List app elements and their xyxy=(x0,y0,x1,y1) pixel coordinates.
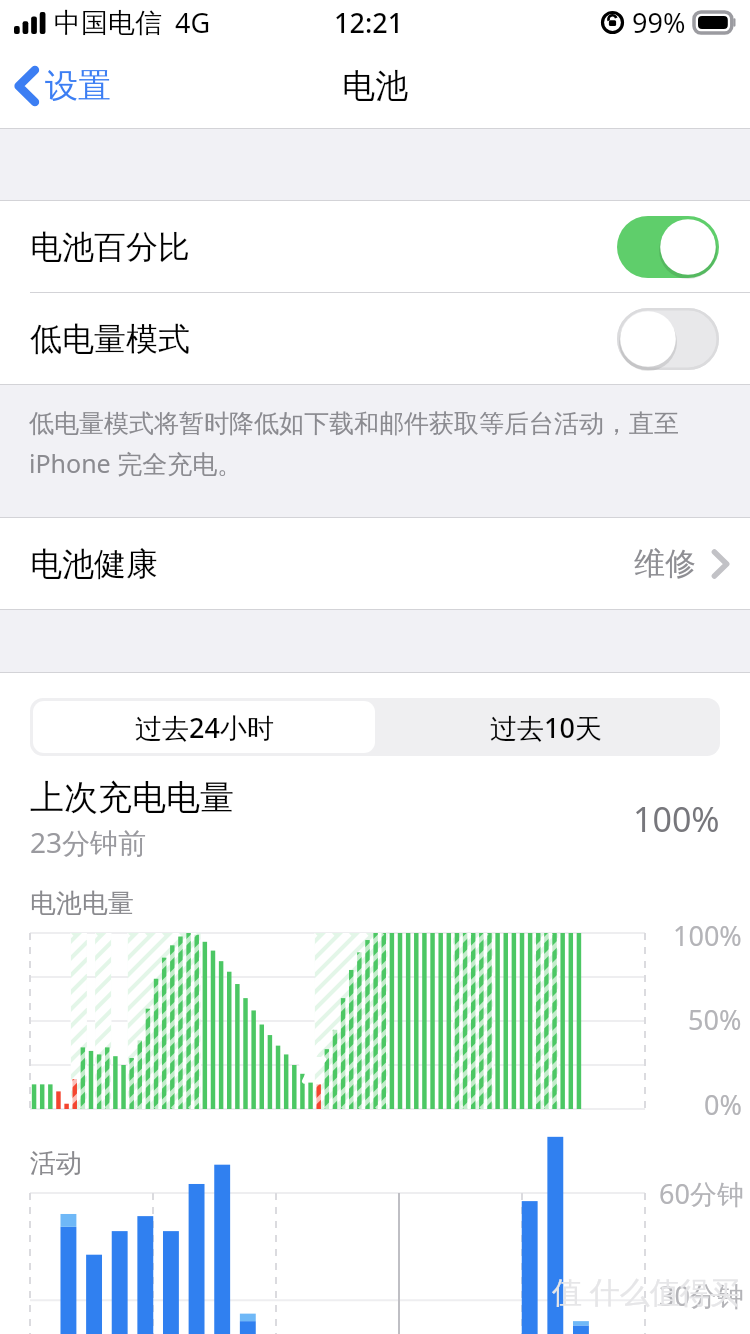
staticText: 低电量模式将暂时降低如下载和邮件获取等后台活动，直至 iPhone 完全充电。 xyxy=(29,405,726,480)
staticText: 电池电量 xyxy=(30,887,134,920)
button[interactable]: 电池百分比 xyxy=(0,201,750,292)
staticText: 12:21 xyxy=(334,4,404,41)
staticText: 中国电信 xyxy=(54,6,162,40)
staticText: 23分钟前 xyxy=(30,823,147,861)
staticText: 上次充电电量 xyxy=(30,776,234,819)
staticText: 100% xyxy=(633,796,720,842)
button[interactable]: 低电量模式 xyxy=(0,293,750,384)
staticText: 值 什么值得买 xyxy=(552,1271,740,1312)
staticText: 维修 xyxy=(634,544,696,583)
button[interactable]: Back xyxy=(0,55,129,117)
staticText: 4G xyxy=(175,4,211,41)
button[interactable]: 过去24小时 xyxy=(33,701,375,753)
staticText: 低电量模式 xyxy=(30,319,190,359)
staticText: 99% xyxy=(632,4,686,41)
staticText: 电池百分比 xyxy=(30,227,190,267)
other: Off xyxy=(617,308,719,370)
button[interactable]: 过去10天 xyxy=(375,701,717,753)
staticText: 0% xyxy=(704,1086,742,1123)
staticText: 60分钟 xyxy=(659,1175,744,1212)
staticText: 活动 xyxy=(30,1147,82,1180)
staticText: 50% xyxy=(688,1001,742,1038)
staticText: 30分钟 xyxy=(659,1277,744,1314)
staticText: 电池 xyxy=(342,65,408,107)
button[interactable]: 电池健康 xyxy=(0,518,750,609)
staticText: 设置 xyxy=(45,65,111,107)
staticText: 过去24小时 xyxy=(135,709,274,746)
staticText: 电池健康 xyxy=(30,544,158,584)
other: Back xyxy=(16,67,38,105)
staticText: 100% xyxy=(673,917,742,954)
other: On xyxy=(617,216,719,278)
staticText: 过去10天 xyxy=(490,709,602,746)
